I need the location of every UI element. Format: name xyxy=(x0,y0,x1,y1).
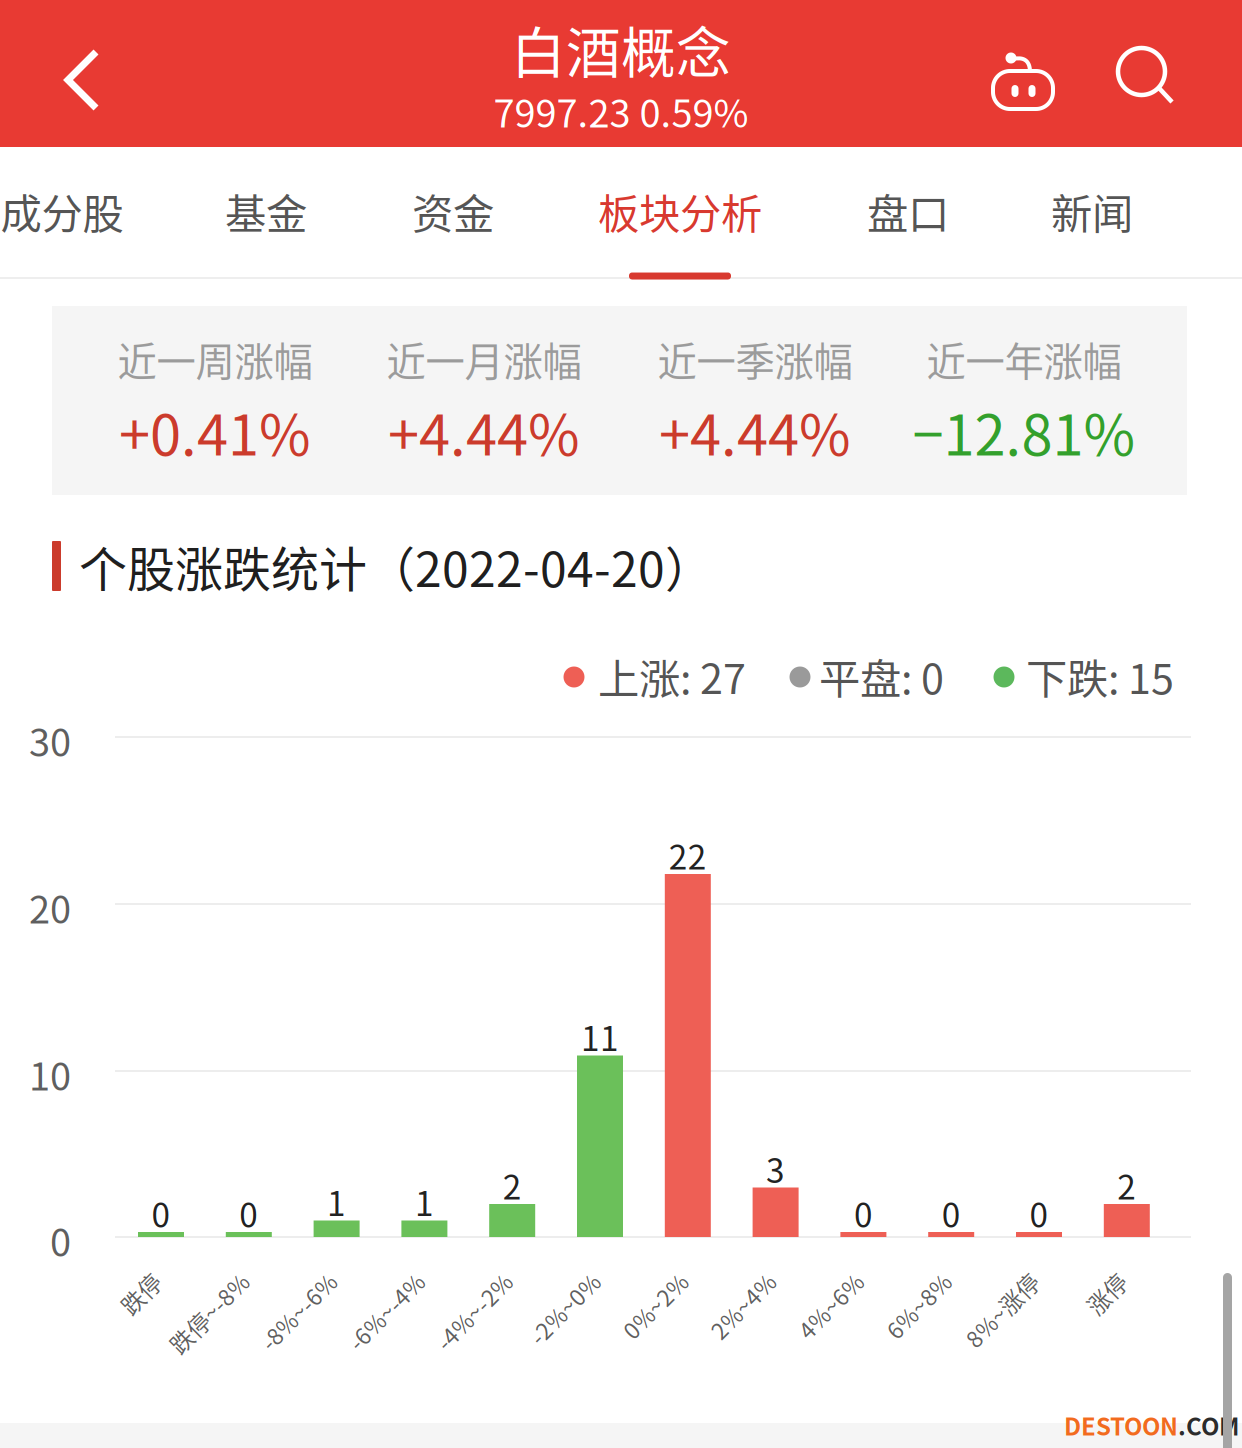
staticText: 跌停 xyxy=(111,1261,157,1293)
staticText: 2%~4% xyxy=(691,1261,772,1293)
button[interactable]: 基金 xyxy=(165,147,367,295)
staticText: 0 xyxy=(854,1189,873,1237)
staticText: 0 xyxy=(151,1189,170,1237)
staticText: +0.41% xyxy=(119,390,311,472)
staticText: -2%~0% xyxy=(507,1261,596,1293)
staticText: -4%~-2% xyxy=(411,1261,508,1293)
staticText: 0 xyxy=(50,1212,71,1267)
staticText: +4.44% xyxy=(659,390,851,472)
staticText: 下跌: 15 xyxy=(1026,646,1174,706)
staticText: 平盘: 0 xyxy=(819,646,944,706)
button[interactable]: 资金 xyxy=(352,147,554,295)
staticText: 2 xyxy=(503,1161,522,1209)
staticText: −12.81% xyxy=(912,390,1135,472)
staticText: 11 xyxy=(581,1012,619,1061)
button[interactable]: AI assistant xyxy=(971,28,1075,132)
staticText: 1 xyxy=(415,1177,434,1226)
staticText: 近一周涨幅 xyxy=(117,330,312,387)
staticText: 跌停~-8% xyxy=(144,1261,245,1293)
staticText: 7997.23 0.59% xyxy=(493,83,748,138)
button[interactable]: 成分股 xyxy=(0,147,163,295)
button[interactable]: Back xyxy=(22,6,142,153)
staticText: 板块分析 xyxy=(598,181,762,241)
staticText: +4.44% xyxy=(388,390,580,472)
staticText: -8%~-6% xyxy=(236,1261,333,1293)
staticText: 30 xyxy=(29,712,71,767)
staticText: 个股涨跌统计（2022-04-20） xyxy=(79,531,713,601)
staticText: 0%~2% xyxy=(603,1261,684,1293)
staticText: 涨停 xyxy=(1077,1261,1123,1293)
staticText: 新闻 xyxy=(1051,181,1133,241)
staticText: 10 xyxy=(29,1046,71,1101)
staticText: 1 xyxy=(327,1177,346,1226)
staticText: 8%~涨停 xyxy=(942,1261,1035,1293)
staticText: 白酒概念 xyxy=(511,9,731,89)
staticText: 3 xyxy=(766,1144,785,1193)
staticText: 22 xyxy=(669,831,707,879)
staticText: DESTOON xyxy=(1064,1408,1178,1442)
staticText: .COM xyxy=(1178,1408,1239,1442)
staticText: 上涨: 27 xyxy=(598,646,746,706)
staticText: 0 xyxy=(239,1189,258,1237)
button[interactable]: 新闻 xyxy=(991,147,1193,295)
staticText: 成分股 xyxy=(0,181,123,241)
staticText: 6%~8% xyxy=(866,1261,947,1293)
button[interactable]: 盘口 xyxy=(807,147,1009,295)
staticText: 20 xyxy=(29,879,71,934)
staticText: 盘口 xyxy=(867,181,949,241)
staticText: 近一月涨幅 xyxy=(386,330,581,387)
button[interactable]: Search xyxy=(1095,24,1199,128)
staticText: 4%~6% xyxy=(778,1261,859,1293)
staticText: 资金 xyxy=(412,181,494,241)
staticText: 近一季涨幅 xyxy=(657,330,852,387)
staticText: 0 xyxy=(942,1189,961,1237)
button[interactable]: 板块分析 xyxy=(579,147,781,295)
staticText: 0 xyxy=(1029,1189,1048,1237)
staticText: -6%~-4% xyxy=(323,1261,420,1293)
staticText: 2 xyxy=(1117,1161,1136,1209)
staticText: 近一年涨幅 xyxy=(926,330,1121,387)
staticText: 基金 xyxy=(225,181,307,241)
